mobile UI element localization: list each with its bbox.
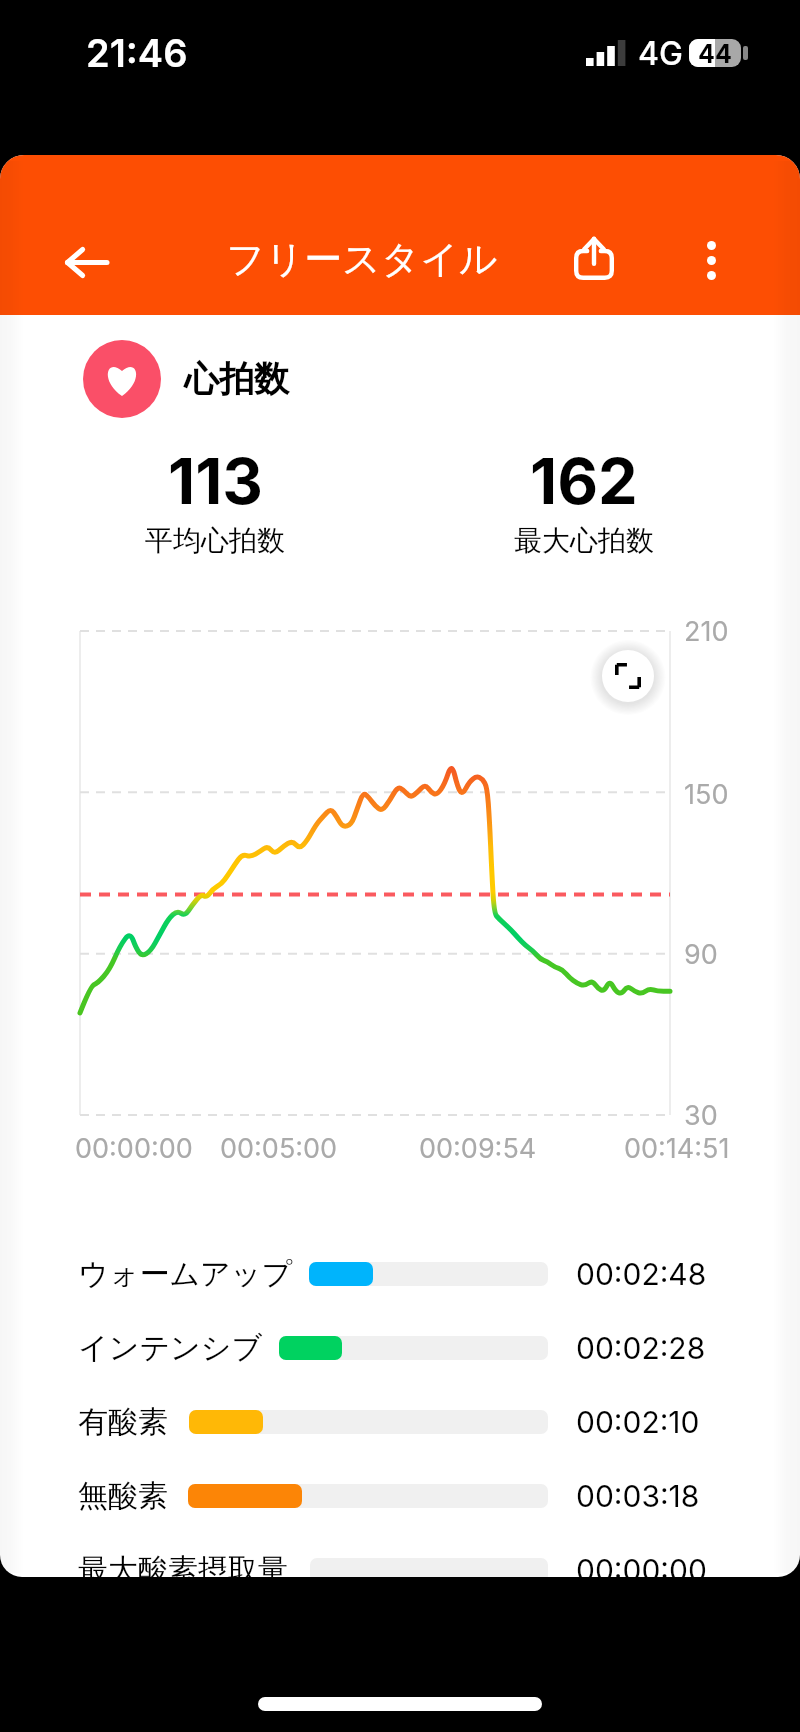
staticText: 44 <box>698 39 732 67</box>
staticText: 00:02:10 <box>576 1404 700 1440</box>
staticText: 最大心拍数 <box>514 523 654 558</box>
staticText: ウォームアップ <box>78 1255 293 1293</box>
staticText: 平均心拍数 <box>145 523 285 558</box>
staticText: 30 <box>684 1099 718 1132</box>
staticText: 00:00:00 <box>75 1132 193 1165</box>
staticText: 00:14:51 <box>624 1132 730 1165</box>
staticText: フリースタイル <box>226 235 498 283</box>
staticText: 00:03:18 <box>576 1478 700 1514</box>
button[interactable]: インテンシブ <box>0 1311 800 1385</box>
button[interactable]: 最大酸素摂取量 <box>0 1533 800 1577</box>
staticText: 最大酸素摂取量 <box>78 1551 288 1577</box>
staticText: 00:05:00 <box>220 1132 338 1165</box>
button[interactable]: Expand chart <box>592 640 664 712</box>
staticText: 210 <box>684 615 729 648</box>
staticText: 00:09:54 <box>419 1132 537 1165</box>
staticText: 150 <box>684 778 729 811</box>
staticText: 90 <box>684 938 718 971</box>
button[interactable]: 無酸素 <box>0 1459 800 1533</box>
button[interactable]: Share <box>554 218 634 298</box>
staticText: 21:46 <box>86 30 188 76</box>
button[interactable]: More options <box>671 220 751 300</box>
button[interactable]: 有酸素 <box>0 1385 800 1459</box>
staticText: インテンシブ <box>78 1329 263 1367</box>
staticText: 心拍数 <box>184 357 289 401</box>
staticText: 00:00:00 <box>576 1552 707 1577</box>
staticText: 4G <box>638 34 683 73</box>
staticText: 有酸素 <box>78 1403 168 1441</box>
button[interactable]: ウォームアップ <box>0 1237 800 1311</box>
staticText: 00:02:28 <box>576 1330 706 1366</box>
staticText: 113 <box>168 443 263 519</box>
staticText: 00:02:48 <box>576 1256 707 1292</box>
button[interactable]: Back <box>46 222 126 302</box>
staticText: 162 <box>530 443 638 519</box>
staticText: 無酸素 <box>78 1477 168 1515</box>
